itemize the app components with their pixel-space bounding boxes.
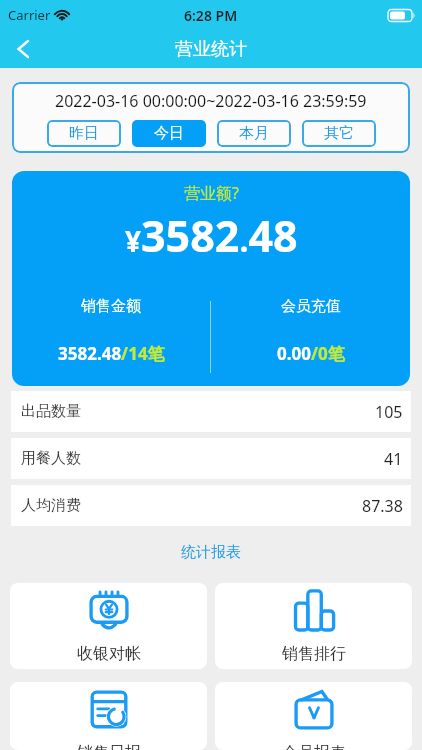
staticText: Carrier xyxy=(8,6,51,24)
staticText: 人均消费 xyxy=(21,496,81,515)
staticText: 本月 xyxy=(239,124,269,143)
staticText: 105 xyxy=(375,401,403,423)
button[interactable] xyxy=(11,37,35,61)
staticText: 87.38 xyxy=(362,495,403,517)
staticText: 2022-03-16 00:00:00~2022-03-16 23:59:59 xyxy=(55,90,367,112)
button[interactable]: 销售日报 xyxy=(10,682,207,750)
button[interactable]: 收银对帐 xyxy=(10,583,207,669)
button[interactable]: 昨日 xyxy=(47,120,121,147)
staticText: ¥3582.48 xyxy=(125,206,298,265)
staticText: 收银对帐 xyxy=(77,644,141,664)
staticText: 3582.48/14笔 xyxy=(58,342,165,365)
button[interactable]: 会员报表 xyxy=(215,682,412,750)
staticText: 销售金额 xyxy=(81,297,141,316)
staticText: 其它 xyxy=(324,124,354,143)
staticText: 销售排行 xyxy=(282,644,346,664)
button[interactable]: 今日 xyxy=(132,120,206,147)
staticText: 营业额? xyxy=(184,182,239,204)
staticText: 6:28 PM xyxy=(184,6,238,25)
button[interactable]: 用餐人数 xyxy=(11,438,411,479)
staticText: 销售日报 xyxy=(77,743,141,750)
staticText: 0.00/0笔 xyxy=(277,342,345,365)
button[interactable]: 出品数量 xyxy=(11,391,411,432)
staticText: 统计报表 xyxy=(181,543,241,562)
staticText: 用餐人数 xyxy=(21,449,81,468)
button[interactable]: 其它 xyxy=(302,120,376,147)
staticText: 出品数量 xyxy=(21,402,81,421)
staticText: 昨日 xyxy=(69,124,99,143)
staticText: 会员充值 xyxy=(281,297,341,316)
staticText: 营业统计 xyxy=(175,38,247,61)
button[interactable]: 本月 xyxy=(217,120,291,147)
button[interactable]: 人均消费 xyxy=(11,485,411,526)
staticText: 今日 xyxy=(154,124,184,143)
staticText: 会员报表 xyxy=(282,743,346,750)
staticText: 41 xyxy=(384,448,403,470)
button[interactable]: 销售排行 xyxy=(215,583,412,669)
